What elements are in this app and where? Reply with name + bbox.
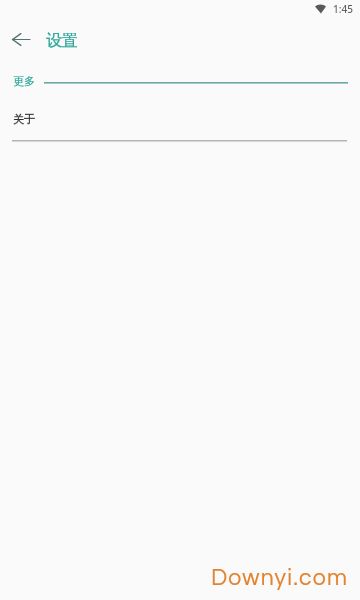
staticText: 更多: [13, 74, 35, 88]
staticText: 关于: [13, 112, 35, 126]
staticText: 设置: [46, 31, 78, 51]
staticText: 1:45: [333, 2, 353, 16]
button[interactable]: Back: [3, 21, 39, 57]
staticText: Downyi.com: [211, 566, 349, 590]
other: Wi-Fi: [315, 4, 326, 14]
button[interactable]: 关于: [0, 100, 360, 142]
